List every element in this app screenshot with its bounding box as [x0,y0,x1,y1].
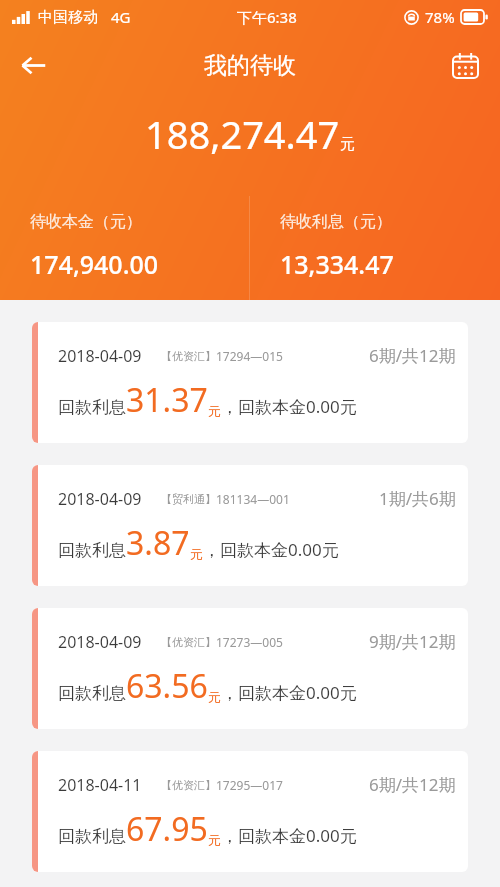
staticText: 17294—015 [216,348,283,364]
staticText: 2018-04-09 [58,345,142,367]
staticText: 6期/共12期 [369,773,456,796]
staticText: 待收利息（元） [280,212,392,232]
button[interactable]: Calendar [440,40,490,90]
staticText: 【优资汇】 [161,635,216,649]
staticText: 13,334.47 [280,247,394,281]
staticText: 2018-04-09 [58,488,142,510]
staticText: ，回款本金0.00元 [203,538,339,561]
staticText: 下午6:38 [237,7,297,27]
staticText: 1期/共6期 [379,487,456,510]
staticText: 63.56 [126,664,208,708]
staticText: 188,274.47 [145,108,340,160]
staticText: 元 [208,689,221,705]
staticText: 2018-04-09 [58,631,142,653]
staticText: ，回款本金0.00元 [221,824,357,847]
button[interactable]: 2018-04-09 [32,465,468,586]
staticText: 174,940.00 [30,247,159,281]
staticText: 6期/共12期 [369,344,456,367]
button[interactable]: 2018-04-09 [32,608,468,729]
staticText: 元 [208,403,221,419]
staticText: 回款利息 [58,397,126,418]
staticText: 回款利息 [58,540,126,561]
staticText: 我的待收 [204,51,296,80]
button[interactable]: 2018-04-09 [32,322,468,443]
staticText: 元 [190,546,203,562]
staticText: 17273—005 [216,634,283,650]
staticText: 中国移动 [38,8,98,27]
staticText: 3.87 [126,521,190,565]
staticText: 回款利息 [58,826,126,847]
staticText: 【优资汇】 [161,349,216,363]
staticText: 元 [208,832,221,848]
staticText: 78% [425,7,455,27]
staticText: 回款利息 [58,683,126,704]
button[interactable]: Back [6,38,60,92]
staticText: ，回款本金0.00元 [221,395,357,418]
staticText: 【优资汇】 [161,778,216,792]
staticText: 31.37 [126,378,208,422]
staticText: 2018-04-11 [58,774,142,796]
staticText: 9期/共12期 [369,630,456,653]
staticText: 4G [111,7,131,27]
staticText: 【贸利通】 [161,492,216,506]
staticText: 元 [340,135,355,154]
staticText: 181134—001 [216,491,290,507]
staticText: ，回款本金0.00元 [221,681,357,704]
button[interactable]: 2018-04-11 [32,751,468,872]
staticText: 17295—017 [216,777,283,793]
staticText: 67.95 [126,807,208,851]
staticText: 待收本金（元） [30,212,142,232]
